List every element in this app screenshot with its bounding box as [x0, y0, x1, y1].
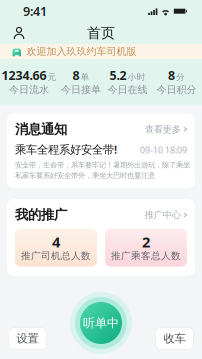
- staticText: 首页: [87, 26, 115, 40]
- staticText: 我的推广: [15, 208, 67, 222]
- staticText: 2: [142, 235, 150, 249]
- staticText: 消息通知: [15, 123, 67, 136]
- staticText: 分: [176, 73, 185, 81]
- staticText: 欢迎加入玖玖约车司机版: [26, 46, 136, 57]
- staticText: 4: [52, 235, 60, 249]
- staticText: 5.2: [109, 69, 126, 81]
- staticText: 乘车全程系好安全带!: [15, 143, 117, 155]
- staticText: 9:41: [23, 4, 47, 18]
- staticText: 8: [72, 69, 79, 81]
- staticText: 元: [47, 73, 56, 81]
- staticText: 09-10 18:09: [140, 145, 187, 155]
- button[interactable]: 个人中心: [7, 23, 31, 43]
- staticText: 推广司机总人数: [21, 251, 91, 261]
- staticText: 安全带，生命带，系车要牢记！暑期外出游玩，除了乘坐: [15, 161, 190, 169]
- staticText: 听单中: [83, 317, 119, 329]
- staticText: 今日积分: [156, 84, 196, 95]
- button[interactable]: 查看更多: [145, 125, 187, 134]
- button[interactable]: 听单中: [69, 291, 133, 355]
- staticText: 设置: [16, 333, 38, 344]
- staticText: 推广中心: [145, 210, 181, 220]
- button[interactable]: 设置: [8, 327, 47, 350]
- staticText: 收车: [163, 333, 185, 344]
- staticText: 查看更多: [145, 125, 181, 134]
- staticText: 今日流水: [9, 84, 49, 95]
- staticText: 私家车要系好安全带外，乘坐大巴时也要注意: [15, 172, 155, 179]
- button[interactable]: 收车: [155, 327, 194, 350]
- button[interactable]: 2: [105, 229, 187, 267]
- staticText: 1234.66: [1, 69, 46, 81]
- staticText: 8: [168, 69, 175, 81]
- button[interactable]: 推广中心: [145, 210, 187, 220]
- staticText: 小时: [127, 73, 145, 81]
- staticText: 单: [80, 73, 89, 81]
- button[interactable]: 4: [15, 229, 97, 267]
- staticText: 今日在线: [107, 84, 147, 95]
- staticText: 今日接单: [61, 84, 101, 95]
- staticText: 推广乘客总人数: [111, 251, 181, 261]
